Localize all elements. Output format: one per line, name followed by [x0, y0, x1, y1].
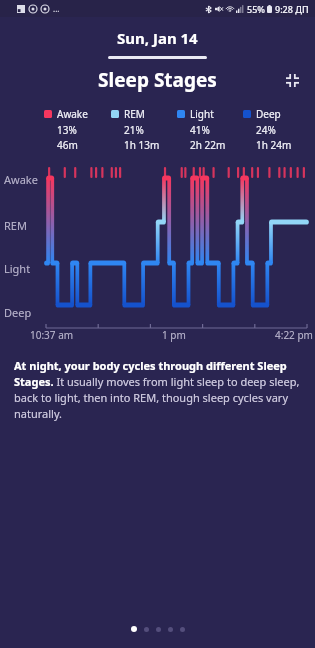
staticText: Sleep Stages — [0, 67, 315, 93]
staticText: Light — [190, 107, 214, 121]
staticText: 46m — [57, 138, 78, 152]
button[interactable] — [144, 627, 149, 632]
staticText: Sun, Jan 14 — [117, 28, 198, 48]
staticText: 1h 24m — [256, 138, 292, 152]
staticText: 1h 13m — [124, 138, 160, 152]
button[interactable]: REM — [111, 107, 177, 152]
staticText: Awake — [57, 107, 88, 121]
button[interactable]: Collapse chart — [279, 67, 305, 93]
staticText: ... — [53, 3, 60, 14]
button[interactable]: Light — [177, 107, 243, 152]
button[interactable]: Sun, Jan 14 — [0, 17, 315, 59]
button[interactable] — [156, 627, 161, 632]
staticText: Deep — [4, 305, 32, 320]
staticText: 10:37 am — [30, 328, 74, 342]
button[interactable] — [131, 626, 137, 632]
staticText: 24% — [256, 123, 276, 137]
staticText: 21% — [124, 123, 144, 137]
button[interactable] — [168, 627, 173, 632]
staticText: Light — [4, 261, 31, 276]
staticText: 9:28 ДП — [275, 3, 309, 15]
staticText: REM — [4, 218, 27, 233]
staticText: 55% — [247, 3, 265, 15]
staticText: 2h 22m — [190, 138, 226, 152]
button[interactable]: Awake — [44, 107, 111, 152]
staticText: Awake — [4, 172, 38, 187]
staticText: 1 pm — [162, 328, 186, 342]
staticText: 4:22 pm — [275, 328, 313, 342]
staticText: Deep — [256, 107, 281, 121]
button[interactable]: Deep — [243, 107, 309, 152]
staticText: At night, your body cycles through diffe… — [14, 358, 301, 421]
button[interactable] — [180, 627, 185, 632]
staticText: 13% — [57, 123, 77, 137]
staticText: REM — [124, 107, 145, 121]
staticText: 41% — [190, 123, 210, 137]
